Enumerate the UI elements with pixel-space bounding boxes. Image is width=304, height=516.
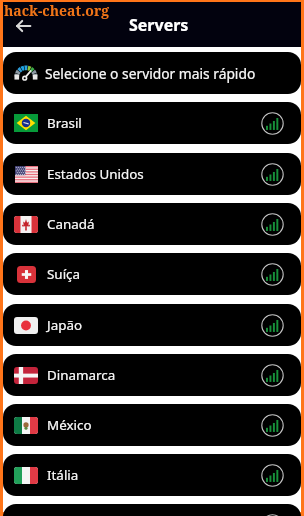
- staticText: México: [47, 416, 92, 434]
- staticText: Selecione o servidor mais rápido: [45, 64, 256, 83]
- staticText: Itália: [47, 466, 79, 484]
- button[interactable]: Brasil: [3, 102, 301, 144]
- staticText: Japão: [47, 316, 83, 334]
- button[interactable]: Japão: [3, 304, 301, 346]
- staticText: Suíça: [47, 265, 81, 283]
- button[interactable]: Canadá: [3, 203, 301, 245]
- staticText: Canadá: [47, 215, 95, 233]
- staticText: Dinamarca: [47, 366, 116, 384]
- button[interactable]: México: [3, 404, 301, 446]
- button[interactable]: Alemanha: [3, 504, 301, 516]
- button[interactable]: Dinamarca: [3, 354, 301, 396]
- button[interactable]: Itália: [3, 454, 301, 496]
- button[interactable]: Suíça: [3, 253, 301, 295]
- staticText: Estados Unidos: [47, 165, 144, 183]
- staticText: hack-cheat.org: [4, 1, 110, 20]
- button[interactable]: Selecione o servidor mais rápido: [3, 52, 301, 94]
- button[interactable]: Back: [14, 13, 40, 39]
- button[interactable]: Estados Unidos: [3, 153, 301, 195]
- staticText: Brasil: [47, 114, 82, 132]
- staticText: Servers: [129, 14, 189, 36]
